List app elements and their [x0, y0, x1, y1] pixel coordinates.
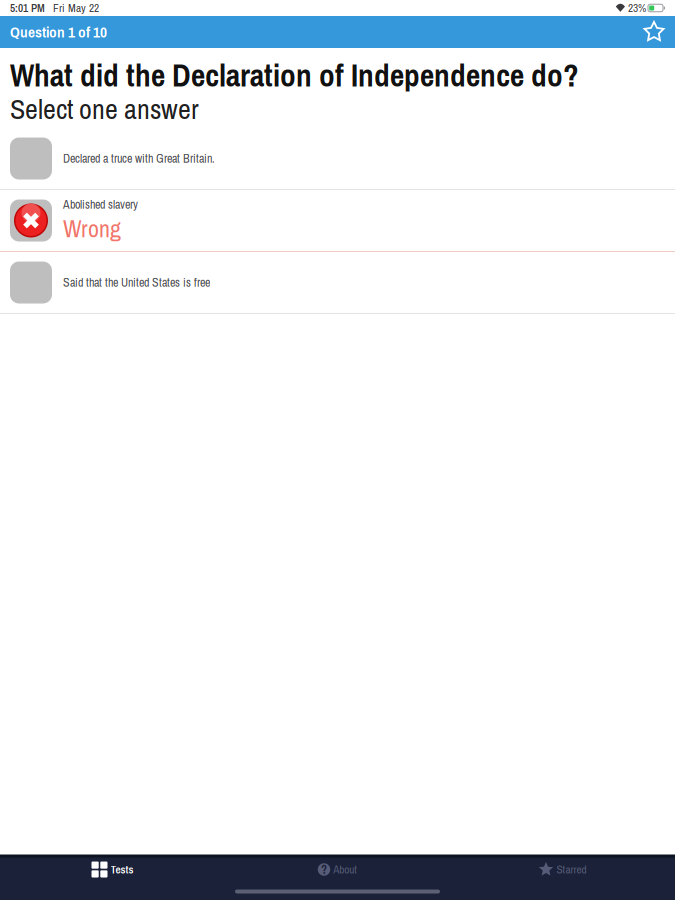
staticText: Select one answer	[10, 90, 199, 120]
staticText: What did the Declaration of Independence…	[10, 54, 579, 90]
button[interactable]: Starred	[450, 854, 675, 884]
button[interactable]: ?	[225, 854, 450, 884]
button[interactable]: Abolished slavery	[0, 190, 675, 252]
staticText: 23%	[628, 0, 646, 16]
staticText: Tests	[110, 862, 133, 877]
button[interactable]: Declared a truce with Great Britain.	[0, 128, 675, 190]
staticText: About	[333, 862, 357, 877]
button[interactable]: Said that the United States is free	[0, 252, 675, 314]
button[interactable]: Tests	[0, 854, 225, 884]
staticText: Starred	[556, 862, 586, 877]
staticText: Wrong	[63, 212, 121, 245]
staticText: Abolished slavery	[63, 196, 138, 212]
staticText: Question 1 of 10	[10, 22, 107, 42]
staticText: Declared a truce with Great Britain.	[63, 150, 215, 167]
staticText: Said that the United States is free	[63, 274, 210, 291]
button[interactable]: Star this question	[639, 16, 669, 48]
staticText: ?	[321, 861, 327, 878]
staticText: 5:01 PM	[10, 0, 45, 16]
staticText: Fri May 22	[53, 0, 99, 16]
